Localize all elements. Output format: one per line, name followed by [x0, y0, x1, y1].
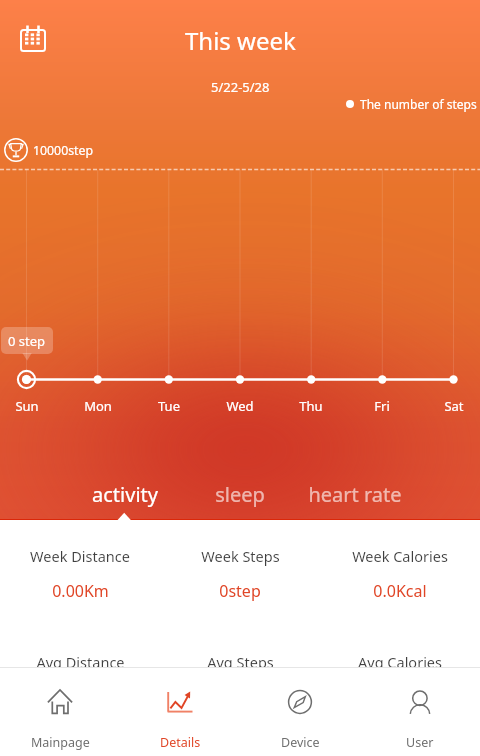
- button[interactable]: Week Steps: [160, 546, 320, 602]
- staticText: heart rate: [308, 481, 402, 508]
- staticText: 0.00Km: [52, 580, 109, 602]
- staticText: Sat: [444, 397, 464, 415]
- staticText: 0 step: [8, 332, 46, 350]
- button[interactable]: heart rate: [295, 464, 415, 520]
- staticText: 5/22-5/28: [211, 78, 270, 96]
- staticText: Device: [281, 734, 320, 751]
- staticText: Mon: [84, 397, 112, 415]
- button[interactable]: Avg Distance: [0, 652, 160, 667]
- staticText: Sun: [15, 397, 39, 415]
- button[interactable]: Calendar: [3, 11, 49, 57]
- button[interactable]: Device: [240, 668, 360, 751]
- staticText: Tue: [158, 397, 180, 415]
- staticText: Wed: [226, 397, 254, 415]
- staticText: Avg Distance: [36, 652, 125, 667]
- staticText: 10000step: [33, 142, 93, 159]
- button[interactable]: Details: [120, 668, 240, 751]
- button[interactable]: Week Distance: [0, 546, 160, 602]
- staticText: Week Steps: [201, 546, 280, 566]
- staticText: The number of steps: [360, 96, 477, 112]
- staticText: 0.0Kcal: [373, 580, 427, 602]
- staticText: activity: [92, 481, 158, 508]
- staticText: Avg Calories: [358, 652, 442, 667]
- button[interactable]: Week Calories: [320, 546, 480, 602]
- staticText: Fri: [374, 397, 390, 415]
- staticText: 0step: [219, 580, 261, 602]
- button[interactable]: Mainpage: [0, 668, 120, 751]
- staticText: Avg Steps: [207, 652, 274, 667]
- staticText: User: [406, 734, 434, 751]
- button[interactable]: Avg Calories: [320, 652, 480, 667]
- button[interactable]: activity: [65, 464, 185, 520]
- staticText: Mainpage: [31, 734, 90, 751]
- button[interactable]: Avg Steps: [160, 652, 320, 667]
- button[interactable]: User: [360, 668, 480, 751]
- staticText: sleep: [215, 481, 265, 508]
- staticText: Details: [160, 734, 201, 751]
- staticText: Thu: [299, 397, 323, 415]
- staticText: Week Distance: [30, 546, 130, 566]
- staticText: Week Calories: [352, 546, 448, 566]
- staticText: This week: [185, 24, 296, 57]
- button[interactable]: sleep: [180, 464, 300, 520]
